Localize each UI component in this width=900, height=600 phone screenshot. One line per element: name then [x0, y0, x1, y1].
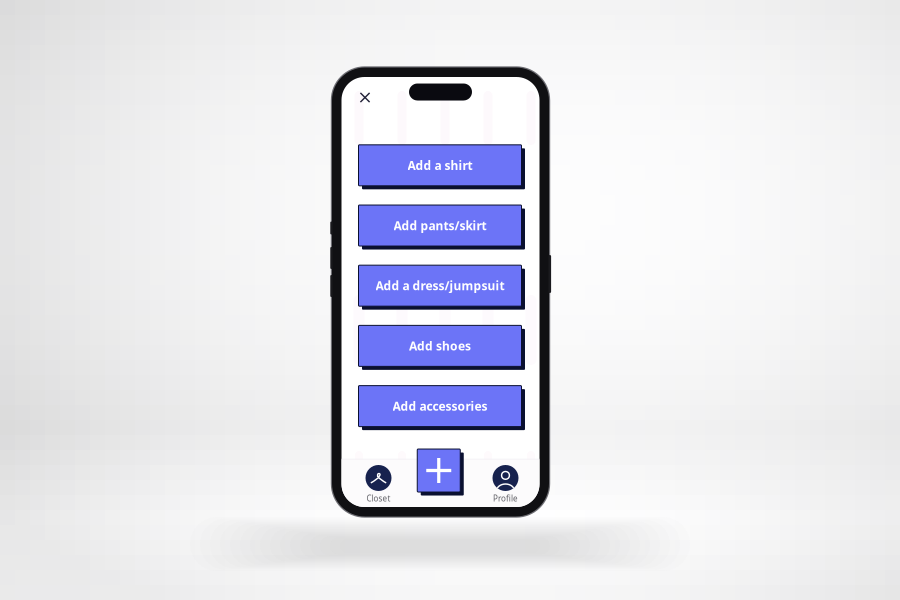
staticText: Add accessories	[392, 398, 487, 414]
staticText: Add a shirt	[407, 157, 472, 173]
button[interactable]: Closet	[350, 462, 406, 506]
button[interactable]: Add accessories	[358, 386, 525, 430]
button[interactable]: Add item	[417, 449, 464, 495]
button[interactable]: Add pants/skirt	[358, 205, 525, 249]
button[interactable]: Close	[350, 82, 380, 112]
staticText: Add shoes	[409, 338, 471, 354]
staticText: Add pants/skirt	[393, 217, 486, 233]
staticText: Add a dress/jumpsuit	[375, 278, 504, 294]
button[interactable]: Add a shirt	[358, 145, 525, 189]
button[interactable]: Profile	[477, 462, 533, 506]
button[interactable]: Add shoes	[358, 325, 525, 370]
button[interactable]: Add a dress/jumpsuit	[358, 265, 525, 310]
staticText: Closet	[366, 493, 390, 504]
staticText: Profile	[493, 493, 518, 504]
